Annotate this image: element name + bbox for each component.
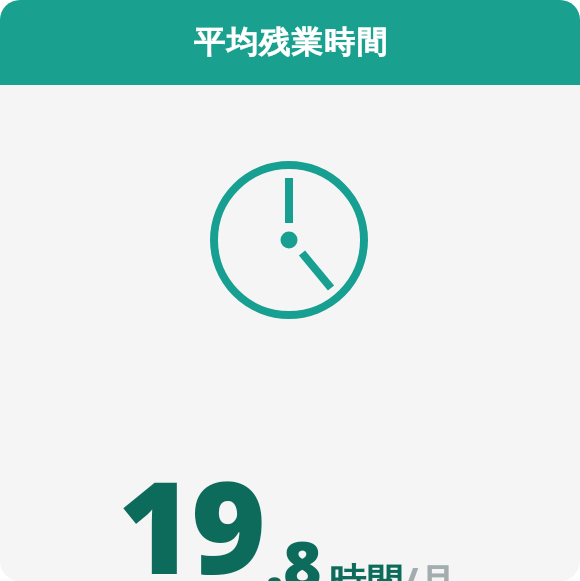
button[interactable]: 平均残業時間 <box>0 0 580 85</box>
staticText: 平均残業時間 <box>193 23 388 62</box>
other: Clock <box>209 160 369 320</box>
staticText: 時間 <box>329 559 403 581</box>
staticText: 19 <box>118 437 265 581</box>
staticText: /月 <box>403 555 456 581</box>
button[interactable]: 19 <box>118 437 448 581</box>
staticText: .8 <box>265 518 321 581</box>
